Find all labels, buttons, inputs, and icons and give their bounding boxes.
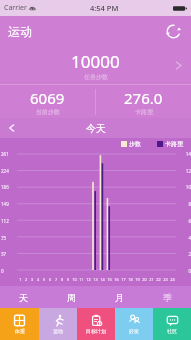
staticText: 15 bbox=[106, 277, 113, 282]
staticText: 1 bbox=[17, 277, 23, 282]
staticText: 9 bbox=[65, 277, 71, 282]
staticText: 6 bbox=[178, 218, 191, 223]
staticText: 11 bbox=[78, 277, 85, 282]
staticText: 149 bbox=[1, 201, 16, 206]
staticText: 186 bbox=[1, 184, 16, 189]
staticText: 0 bbox=[1, 268, 16, 273]
staticText: 步数 bbox=[129, 140, 141, 148]
button[interactable]: 月 bbox=[95, 286, 143, 308]
staticText: 12 bbox=[85, 277, 92, 282]
button[interactable]: 周 bbox=[47, 286, 95, 308]
staticText: 好友 bbox=[129, 328, 139, 334]
staticText: 4:54 PM bbox=[90, 3, 119, 13]
staticText: 8 bbox=[59, 277, 65, 282]
staticText: 今天 bbox=[86, 122, 106, 135]
staticText: 10 bbox=[71, 277, 78, 282]
staticText: 卡路里 bbox=[165, 140, 183, 148]
staticText: 21 bbox=[148, 277, 155, 282]
button[interactable]: 季 bbox=[143, 286, 191, 308]
staticText: 24 bbox=[169, 277, 176, 282]
staticText: 4 bbox=[178, 235, 191, 240]
staticText: 10000 bbox=[71, 50, 120, 73]
staticText: 6069 bbox=[30, 88, 65, 108]
staticText: 周 bbox=[67, 292, 76, 303]
button[interactable]: 运动 bbox=[39, 308, 77, 340]
staticText: 天 bbox=[19, 292, 28, 303]
staticText: 37 bbox=[1, 251, 16, 256]
staticText: 23 bbox=[162, 277, 169, 282]
staticText: 运动 bbox=[8, 24, 32, 39]
staticText: 19 bbox=[134, 277, 141, 282]
staticText: 0 bbox=[178, 268, 191, 273]
staticText: 8 bbox=[178, 201, 191, 206]
staticText: 7 bbox=[53, 277, 59, 282]
staticText: 18 bbox=[127, 277, 134, 282]
button[interactable]: 276.0 bbox=[96, 85, 191, 118]
staticText: 体重 bbox=[15, 328, 25, 334]
staticText: 季 bbox=[163, 292, 172, 303]
staticText: 17 bbox=[120, 277, 127, 282]
staticText: 14 bbox=[99, 277, 106, 282]
staticText: 2 bbox=[178, 251, 191, 256]
button[interactable]: Previous day bbox=[4, 120, 20, 136]
staticText: 2 bbox=[23, 277, 29, 282]
staticText: 14 bbox=[178, 151, 191, 156]
staticText: 5 bbox=[41, 277, 47, 282]
button[interactable]: 天 bbox=[0, 286, 47, 308]
staticText: 10 bbox=[178, 184, 191, 189]
staticText: 社区 bbox=[167, 328, 177, 334]
staticText: 6 bbox=[47, 277, 53, 282]
button[interactable]: 目标计划 bbox=[77, 308, 115, 340]
staticText: 4 bbox=[35, 277, 41, 282]
staticText: 261 bbox=[1, 151, 16, 156]
staticText: 75 bbox=[1, 235, 16, 240]
staticText: 276.0 bbox=[124, 88, 163, 108]
button[interactable]: 好友 bbox=[115, 308, 153, 340]
staticText: 3 bbox=[29, 277, 35, 282]
button[interactable]: 6069 bbox=[0, 85, 95, 118]
staticText: 13 bbox=[92, 277, 99, 282]
staticText: 月 bbox=[115, 292, 124, 303]
staticText: 任务步数 bbox=[84, 73, 108, 81]
button[interactable]: 体重 bbox=[0, 308, 39, 340]
button[interactable]: 10000 bbox=[0, 46, 191, 84]
staticText: 20 bbox=[141, 277, 148, 282]
staticText: 22 bbox=[155, 277, 162, 282]
staticText: 16 bbox=[113, 277, 120, 282]
staticText: 卡路里 bbox=[135, 108, 153, 116]
staticText: 12 bbox=[178, 168, 191, 173]
staticText: 目标计划 bbox=[86, 328, 106, 334]
staticText: 运动 bbox=[53, 328, 63, 334]
staticText: Carrier bbox=[4, 3, 27, 13]
staticText: 112 bbox=[1, 218, 16, 223]
button[interactable]: 社区 bbox=[153, 308, 191, 340]
button[interactable]: Sync bbox=[163, 21, 183, 41]
staticText: 224 bbox=[1, 168, 16, 173]
staticText: 当前步数 bbox=[36, 108, 60, 116]
